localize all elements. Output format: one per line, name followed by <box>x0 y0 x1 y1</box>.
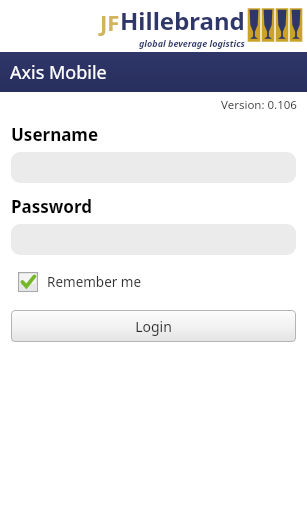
staticText: Remember me <box>47 273 142 291</box>
button[interactable]: Login <box>11 310 296 342</box>
staticText: Username <box>11 123 99 146</box>
staticText: Hillebrand <box>120 4 245 37</box>
staticText: global beverage logistics <box>139 37 245 49</box>
button[interactable]: Remember me checkbox <box>18 272 142 292</box>
staticText: Version: 0.106 <box>221 97 297 113</box>
other: Remember me checkbox <box>18 272 38 292</box>
staticText: Login <box>135 317 172 336</box>
staticText: Axis Mobile <box>10 60 107 85</box>
staticText: JF <box>100 7 120 37</box>
staticText: Password <box>11 195 92 218</box>
